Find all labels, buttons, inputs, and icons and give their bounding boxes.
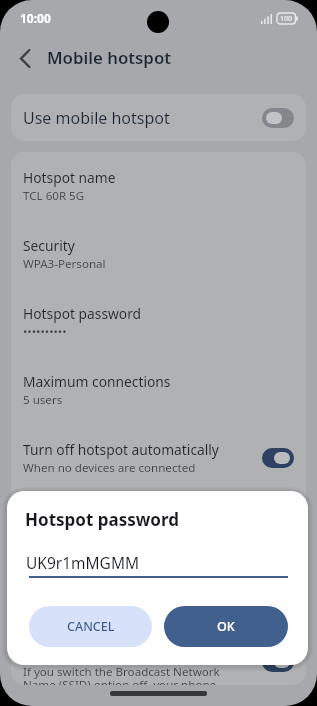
staticText: Use mobile hotspot: [23, 107, 170, 129]
staticText: Band: [23, 508, 57, 527]
staticText: ••••••••••: [23, 324, 67, 340]
staticText: CANCEL: [67, 618, 115, 635]
staticText: 0 devices connected: [23, 596, 133, 612]
button[interactable]: Use mobile hotspot: [11, 94, 306, 141]
staticText: Connected devices: [23, 576, 144, 595]
staticText: Security: [23, 236, 75, 255]
button[interactable]: Connected devices: [11, 560, 306, 628]
staticText: If you switch the Broadcast Network Name…: [23, 664, 220, 685]
staticText: 5 users: [23, 392, 63, 408]
staticText: Turn off hotspot automatically: [23, 440, 219, 459]
button[interactable]: CANCEL: [29, 606, 152, 647]
staticText: Hotspot password: [25, 508, 179, 531]
staticText: TCL 60R 5G: [23, 188, 85, 204]
staticText: Broadcast network name (SSID): [23, 642, 228, 661]
staticText: Mobile hotspot: [47, 46, 172, 69]
staticText: UK9r1mMGMM: [26, 552, 140, 573]
staticText: Hotspot name: [23, 168, 116, 187]
button[interactable]: Broadcast network name (SSID): [11, 628, 306, 685]
button[interactable]: Back: [8, 41, 42, 75]
button[interactable]: Hotspot name: [11, 152, 306, 220]
button[interactable]: Turn off hotspot automatically: [11, 424, 306, 492]
button[interactable]: Hotspot password: [11, 288, 306, 356]
staticText: OK: [217, 618, 235, 635]
staticText: Maximum connections: [23, 372, 171, 391]
button[interactable]: Maximum connections: [11, 356, 306, 424]
staticText: When no devices are connected: [23, 460, 196, 476]
button[interactable]: OK: [164, 606, 288, 647]
staticText: 100: [280, 14, 293, 24]
staticText: Hotspot password: [23, 304, 142, 323]
staticText: WPA3-Personal: [23, 256, 106, 272]
staticText: 10:00: [20, 10, 51, 26]
button[interactable]: Band: [11, 492, 306, 560]
button[interactable]: Security: [11, 220, 306, 288]
